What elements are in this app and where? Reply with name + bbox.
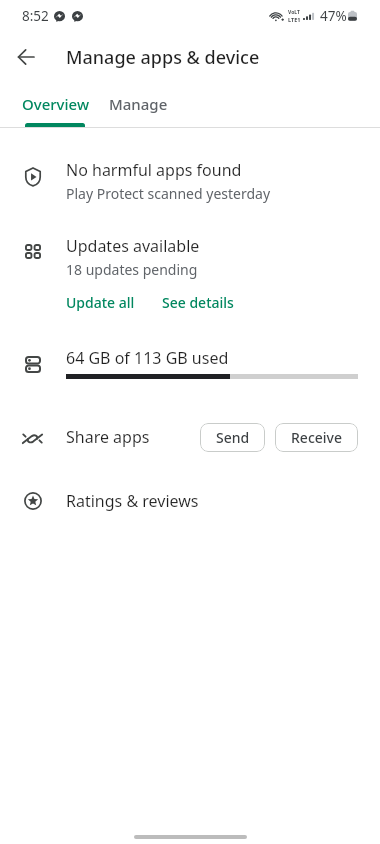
staticText: No harmful apps found bbox=[66, 159, 242, 181]
staticText: VoLTE bbox=[288, 9, 300, 16]
staticText: Play Protect scanned yesterday bbox=[66, 184, 271, 203]
button[interactable]: Ratings & reviews bbox=[0, 482, 380, 520]
button[interactable]: Updates available bbox=[0, 228, 380, 278]
button[interactable]: Send bbox=[200, 423, 265, 452]
button[interactable]: Back bbox=[6, 37, 46, 77]
staticText: LTE1 bbox=[288, 16, 300, 23]
staticText: Send bbox=[216, 428, 250, 447]
button[interactable]: Manage bbox=[100, 82, 177, 128]
staticText: See details bbox=[162, 293, 234, 312]
staticText: Update all bbox=[66, 293, 135, 312]
staticText: 18 updates pending bbox=[66, 260, 198, 279]
staticText: Manage bbox=[109, 94, 168, 114]
button[interactable]: Update all bbox=[62, 288, 139, 317]
staticText: Updates available bbox=[66, 235, 200, 257]
button[interactable]: Share apps bbox=[0, 416, 195, 458]
staticText: Manage apps & device bbox=[66, 45, 260, 70]
button[interactable]: Receive bbox=[275, 423, 358, 452]
button[interactable]: No harmful apps found bbox=[0, 152, 380, 210]
staticText: Overview bbox=[22, 94, 89, 114]
staticText: 64 GB of 113 GB used bbox=[66, 347, 229, 369]
staticText: 47% bbox=[320, 7, 347, 25]
staticText: Ratings & reviews bbox=[66, 490, 199, 512]
button[interactable]: Overview bbox=[11, 82, 100, 128]
staticText: Receive bbox=[291, 428, 342, 447]
button[interactable]: 64 GB of 113 GB used bbox=[0, 340, 380, 386]
staticText: 8:52 bbox=[22, 7, 49, 25]
button[interactable]: See details bbox=[158, 288, 238, 317]
staticText: Share apps bbox=[66, 426, 150, 448]
